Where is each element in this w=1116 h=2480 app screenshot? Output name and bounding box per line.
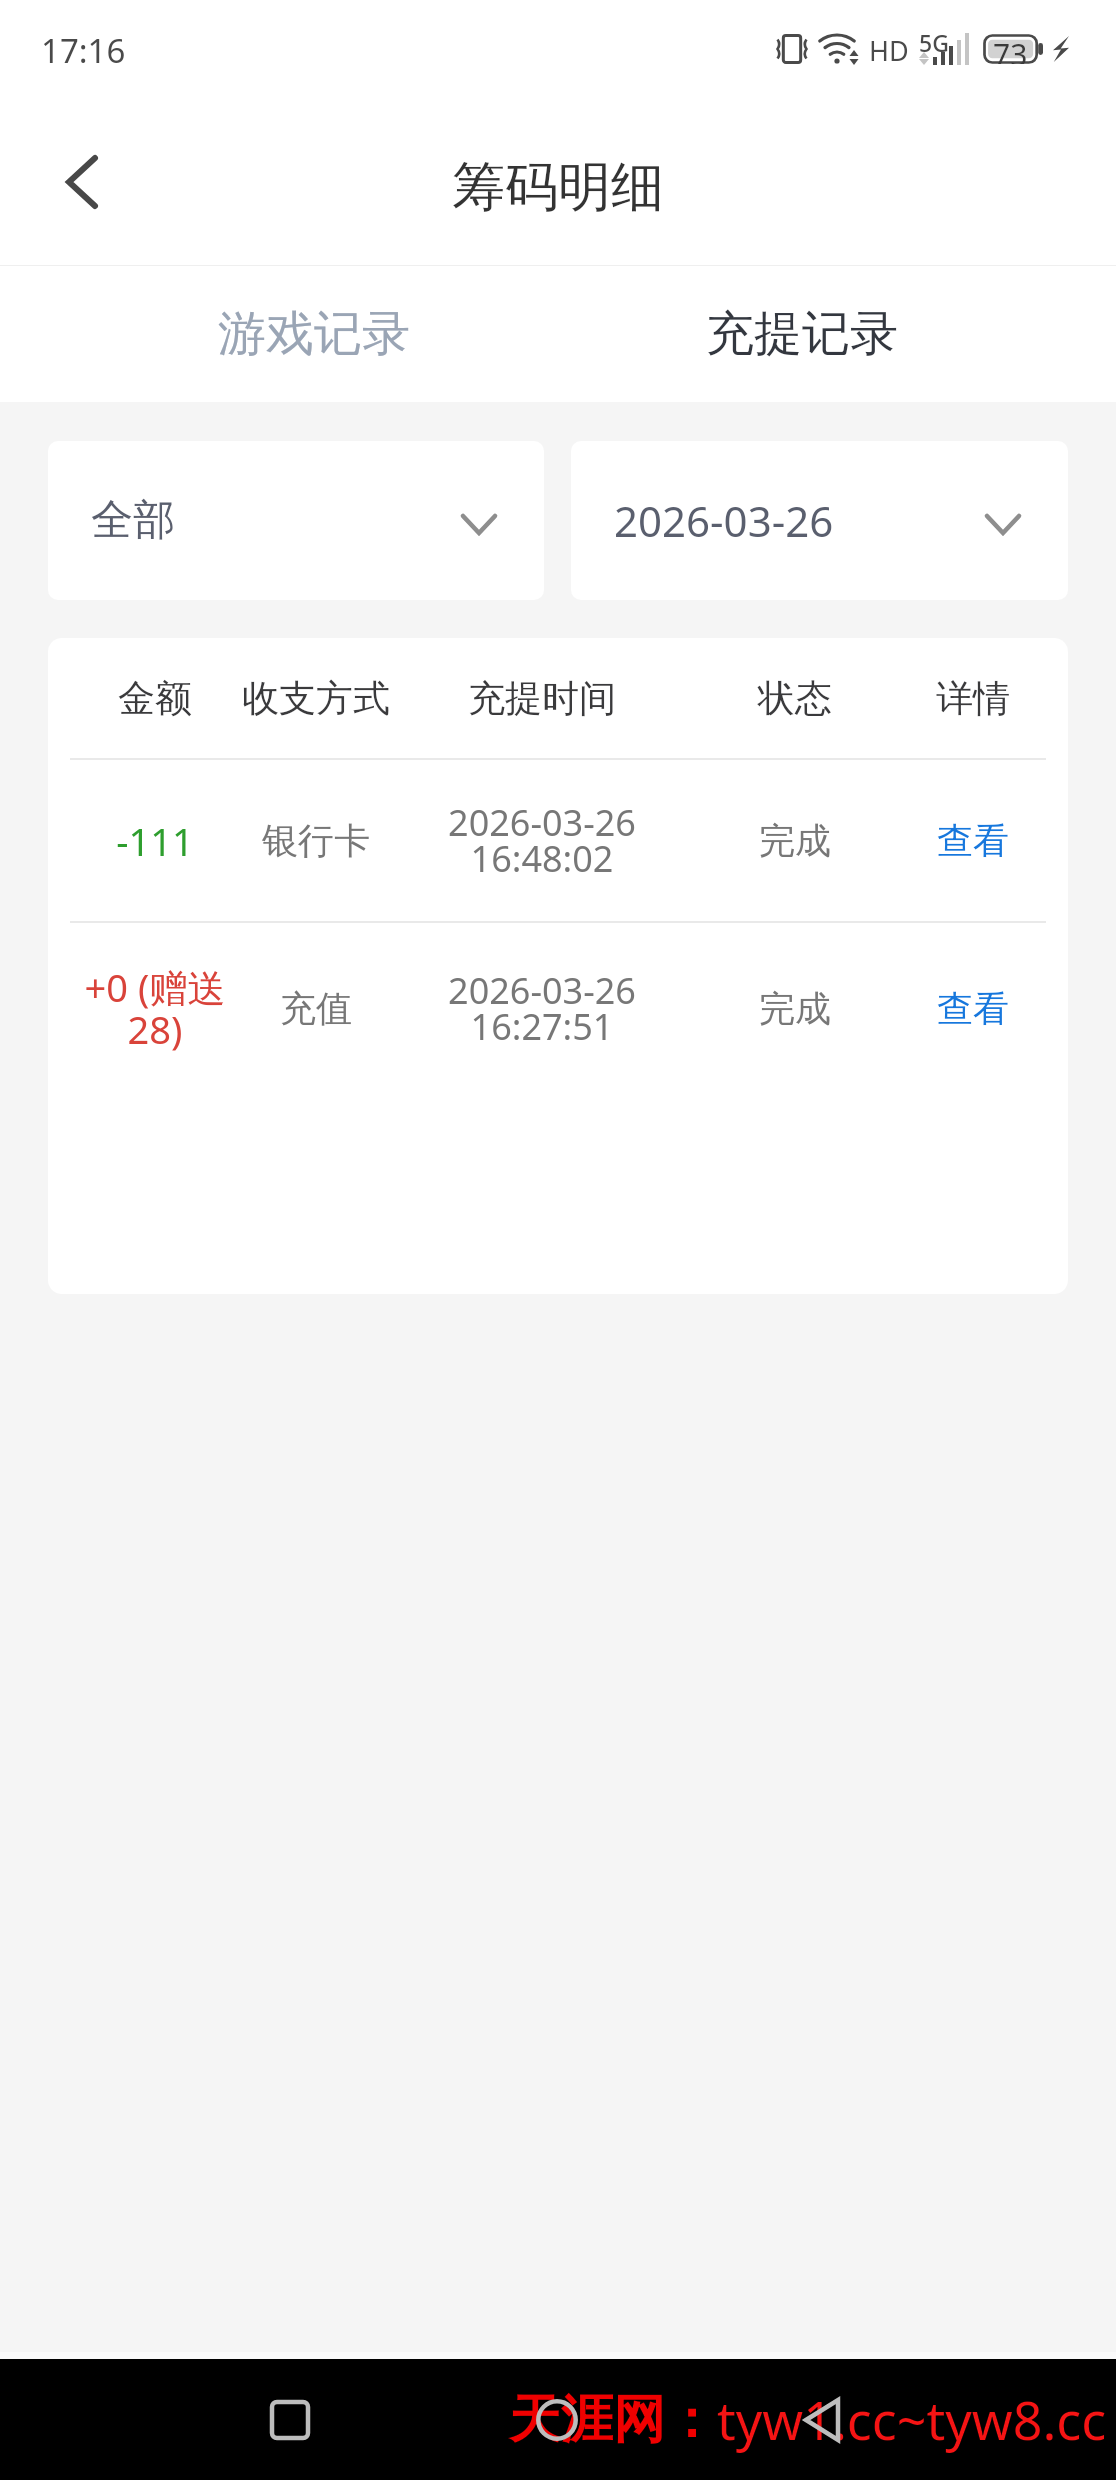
button[interactable]: Recent apps [250, 2380, 330, 2460]
staticText: 游戏记录 [218, 304, 410, 364]
staticText: 5G [919, 27, 949, 58]
staticText: 天涯网： [509, 2387, 717, 2453]
staticText: 充提记录 [706, 304, 898, 364]
staticText: 详情 [936, 675, 1010, 722]
staticText: 2026-03-26 16:27:51 [448, 966, 636, 1051]
staticText: 金额 [118, 675, 192, 722]
staticText: 查看 [937, 986, 1009, 1031]
staticText: 查看 [937, 818, 1009, 863]
staticText: 充提时间 [468, 675, 616, 722]
button[interactable]: 全部 [48, 441, 544, 600]
staticText: 收支方式 [242, 675, 390, 722]
staticText: 73 [993, 34, 1028, 64]
staticText: 完成 [759, 986, 831, 1031]
staticText: tyw1.cc~tyw8.cc [717, 2384, 1107, 2455]
staticText: -111 [116, 815, 194, 867]
staticText: HD [869, 32, 909, 69]
staticText: +0 (赠送 28) [80, 961, 230, 1055]
button[interactable]: 游戏记录 [70, 266, 558, 402]
button[interactable]: Home [517, 2380, 597, 2460]
button[interactable]: Back [782, 2380, 862, 2460]
button[interactable]: +0 (赠送 28) [48, 923, 1068, 1093]
button[interactable]: -111 [48, 760, 1068, 921]
staticText: 银行卡 [262, 818, 370, 863]
staticText: 充值 [280, 986, 352, 1031]
staticText: 完成 [759, 818, 831, 863]
staticText: 2026-03-26 16:48:02 [448, 798, 636, 883]
staticText: 2026-03-26 [614, 492, 834, 549]
staticText: 17:16 [41, 28, 126, 73]
staticText: 筹码明细 [452, 154, 664, 221]
button[interactable]: 2026-03-26 [571, 441, 1068, 600]
button[interactable]: 充提记录 [558, 266, 1046, 402]
staticText: 状态 [758, 675, 832, 722]
button[interactable]: 查看 [888, 923, 1058, 1093]
button[interactable]: Back [16, 116, 148, 248]
staticText: 全部 [91, 494, 175, 547]
button[interactable]: 查看 [888, 760, 1058, 921]
